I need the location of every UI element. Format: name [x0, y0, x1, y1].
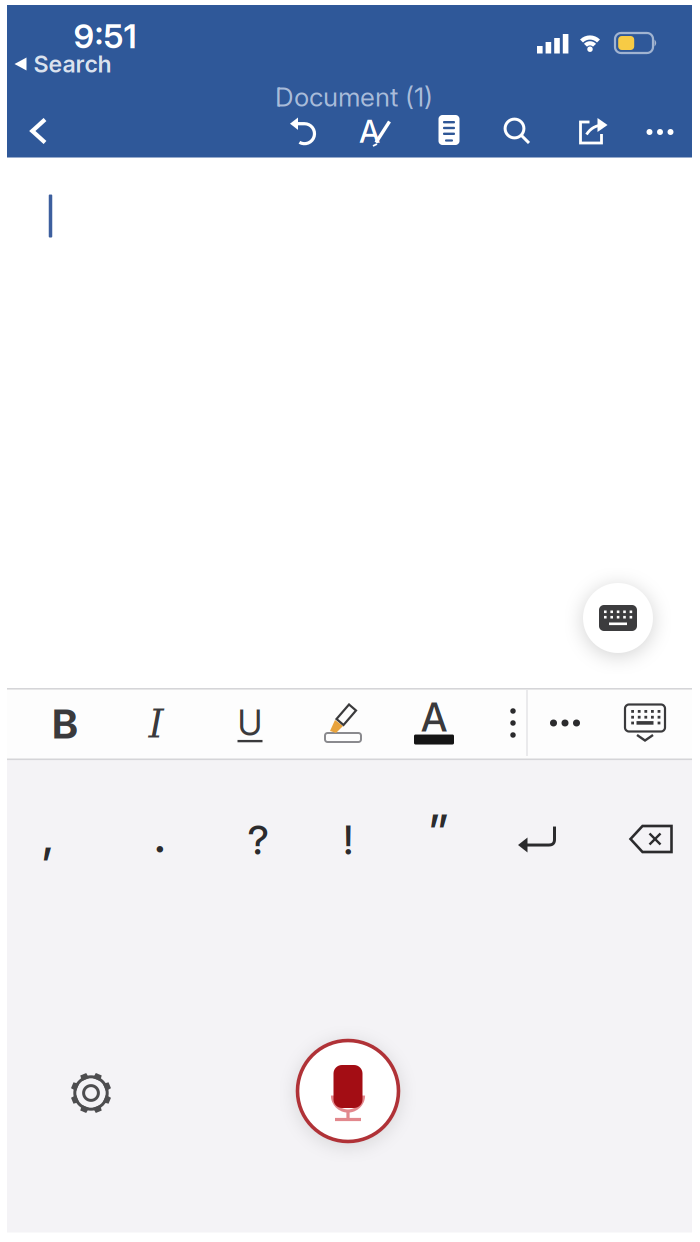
button[interactable]: Settings — [68, 1070, 114, 1116]
button[interactable]: I — [134, 702, 178, 746]
button[interactable]: Return — [518, 826, 556, 853]
button[interactable]: Hide Keyboard — [625, 704, 665, 741]
staticText: A — [421, 694, 447, 741]
button[interactable]: Share — [576, 117, 607, 145]
staticText: A — [359, 113, 380, 150]
button[interactable]: Format — [359, 115, 390, 146]
staticText: . — [153, 809, 167, 863]
button[interactable]: Find — [503, 117, 530, 144]
staticText: ? — [247, 816, 268, 864]
staticText: Search — [33, 50, 111, 78]
button[interactable]: Undo — [289, 117, 316, 144]
button[interactable]: More — [644, 119, 676, 145]
button[interactable]: Delete — [630, 826, 671, 852]
staticText: , — [41, 809, 55, 863]
button[interactable]: U — [228, 701, 272, 745]
staticText: B — [52, 700, 78, 748]
button[interactable]: , — [23, 811, 73, 861]
button[interactable]: Dictate — [296, 1039, 400, 1143]
button[interactable]: More Options — [545, 703, 585, 743]
staticText: I — [148, 701, 163, 746]
button[interactable]: Back — [30, 118, 47, 144]
button[interactable]: ? — [233, 815, 283, 865]
button[interactable]: B — [43, 702, 87, 746]
staticText: ” — [427, 804, 448, 858]
button[interactable]: Back to Search — [14, 52, 111, 76]
staticText: Document (1) — [275, 81, 433, 113]
button[interactable]: Mobile View — [438, 115, 459, 145]
button[interactable]: Show Keyboard — [581, 581, 655, 655]
staticText: ! — [343, 816, 352, 864]
staticText: U — [237, 702, 262, 744]
button[interactable]: . — [135, 811, 185, 861]
button[interactable]: Highlight — [324, 702, 364, 744]
staticText: 9:51 — [73, 16, 136, 56]
button[interactable]: Font Colour — [414, 703, 454, 744]
button[interactable]: ” — [413, 806, 463, 856]
button[interactable]: ! — [323, 815, 373, 865]
button[interactable]: More Formatting — [502, 702, 524, 744]
